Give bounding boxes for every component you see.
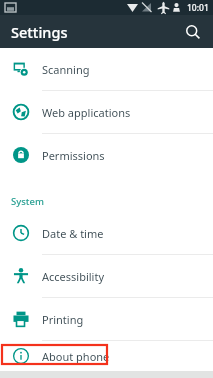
button[interactable]: Search: [179, 18, 207, 46]
staticText: System: [11, 195, 44, 208]
staticText: Accessibility: [42, 269, 105, 284]
button[interactable]: Scanning: [0, 48, 213, 90]
button[interactable]: About phone: [0, 341, 213, 371]
button[interactable]: Printing: [0, 298, 213, 340]
staticText: Printing: [42, 312, 84, 327]
button[interactable]: Web applications: [0, 91, 213, 133]
staticText: Settings: [11, 22, 68, 42]
staticText: About phone: [42, 349, 110, 364]
staticText: Permissions: [42, 148, 105, 163]
staticText: 10:01: [187, 2, 209, 14]
button[interactable]: Accessibility: [0, 255, 213, 297]
button[interactable]: Date & time: [0, 212, 213, 254]
button[interactable]: Permissions: [0, 134, 213, 176]
staticText: Web applications: [42, 105, 131, 120]
staticText: Date & time: [42, 226, 104, 241]
staticText: Scanning: [42, 62, 90, 77]
